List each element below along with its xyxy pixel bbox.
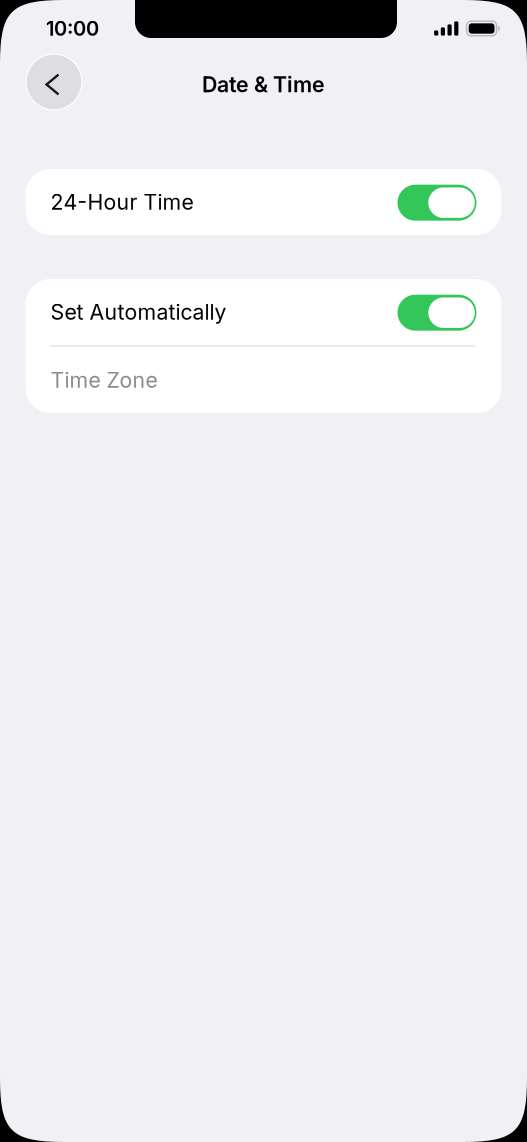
button[interactable]: Set Automatically — [25, 279, 501, 345]
button[interactable]: Time Zone — [25, 347, 501, 413]
staticText: Set Automatically — [50, 299, 226, 325]
button[interactable]: 24-Hour Time — [25, 169, 501, 235]
staticText: Date & Time — [202, 72, 325, 97]
staticText: Time Zone — [50, 367, 157, 393]
button[interactable]: Back — [25, 53, 83, 111]
staticText: 10:00 — [46, 16, 99, 41]
staticText: 24-Hour Time — [50, 189, 193, 215]
